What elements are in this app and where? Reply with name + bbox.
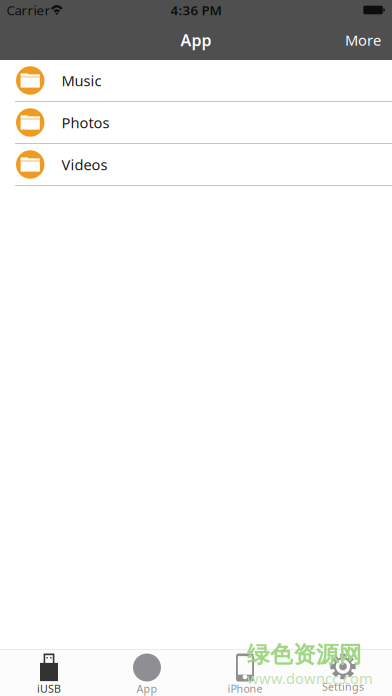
staticText: 4:36 PM: [170, 1, 221, 19]
staticText: iPhone: [227, 681, 262, 696]
button[interactable]: Photos: [0, 102, 392, 144]
staticText: App: [136, 681, 157, 696]
button[interactable]: More: [334, 21, 392, 59]
staticText: iUSB: [37, 681, 61, 696]
staticText: Videos: [61, 155, 107, 174]
staticText: Settings: [322, 679, 364, 694]
button[interactable]: iUSB: [0, 649, 98, 696]
staticText: Carrier: [6, 1, 50, 19]
button[interactable]: App: [98, 649, 196, 696]
button[interactable]: Music: [0, 60, 392, 102]
staticText: App: [180, 29, 211, 51]
staticText: Music: [61, 71, 101, 90]
staticText: www.downcc.com: [247, 668, 373, 688]
staticText: Photos: [61, 113, 109, 132]
button[interactable]: Settings: [294, 649, 392, 696]
button[interactable]: iPhone: [196, 649, 294, 696]
staticText: More: [345, 30, 381, 50]
button[interactable]: Videos: [0, 144, 392, 186]
staticText: 绿色资源网: [247, 641, 362, 668]
